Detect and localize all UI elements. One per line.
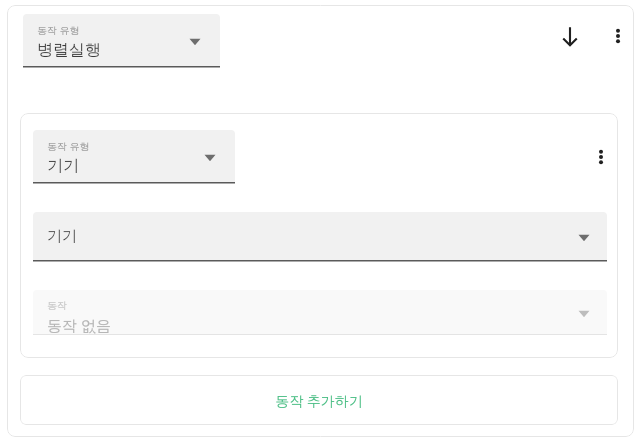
button[interactable]: Move down <box>550 16 590 56</box>
button[interactable]: More options <box>581 137 618 177</box>
button[interactable]: 동작 <box>33 290 607 336</box>
staticText: 동작 없음 <box>47 315 111 334</box>
button[interactable]: 동작 유형 <box>33 130 235 184</box>
button[interactable]: More options <box>598 16 634 56</box>
staticText: 동작 유형 <box>37 23 80 37</box>
staticText: 동작 추가하기 <box>275 391 363 410</box>
button[interactable]: 동작 유형 <box>23 14 220 68</box>
staticText: 동작 유형 <box>47 139 90 153</box>
button[interactable]: 기기 <box>33 212 607 262</box>
staticText: 동작 <box>47 299 67 312</box>
button[interactable]: 동작 추가하기 <box>20 375 618 425</box>
staticText: 병렬실행 <box>37 40 101 60</box>
staticText: 기기 <box>47 227 77 246</box>
staticText: 기기 <box>47 156 79 176</box>
